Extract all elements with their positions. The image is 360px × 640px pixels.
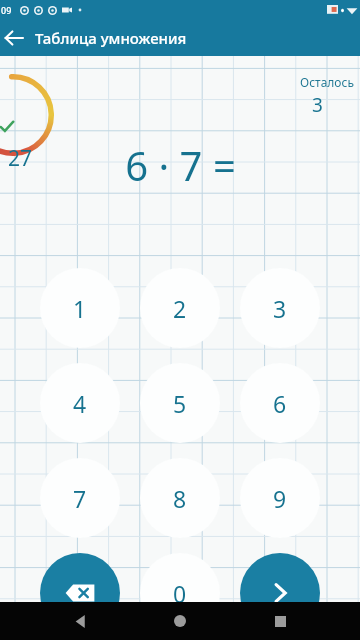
button[interactable]: Backspace bbox=[40, 553, 120, 633]
staticText: 8 bbox=[173, 483, 187, 514]
staticText: 0 bbox=[173, 578, 187, 609]
button[interactable]: Submit bbox=[240, 553, 320, 633]
staticText: 2 bbox=[173, 293, 187, 324]
button[interactable]: Recent apps bbox=[261, 602, 299, 640]
button[interactable]: 6 bbox=[240, 363, 320, 443]
button[interactable]: 2 bbox=[140, 268, 220, 348]
button[interactable]: Back bbox=[0, 20, 34, 56]
button[interactable]: 7 bbox=[40, 458, 120, 538]
staticText: 6 bbox=[273, 388, 287, 419]
button[interactable]: 8 bbox=[140, 458, 220, 538]
staticText: 9 bbox=[273, 483, 287, 514]
button[interactable]: 4 bbox=[40, 363, 120, 443]
staticText: 27 bbox=[8, 144, 33, 173]
staticText: 6 · 7 = bbox=[125, 138, 236, 192]
button[interactable]: Back bbox=[62, 602, 100, 640]
button[interactable]: 5 bbox=[140, 363, 220, 443]
button[interactable]: 9 bbox=[240, 458, 320, 538]
staticText: 5 bbox=[173, 388, 187, 419]
staticText: 09 bbox=[1, 4, 12, 16]
staticText: 3 bbox=[273, 293, 287, 324]
button[interactable]: 1 bbox=[40, 268, 120, 348]
staticText: 4 bbox=[73, 388, 87, 419]
staticText: 1 bbox=[73, 293, 87, 324]
button[interactable]: Home bbox=[161, 602, 199, 640]
staticText: 3 bbox=[312, 92, 323, 118]
staticText: Осталось bbox=[300, 74, 354, 90]
staticText: Таблица умножения bbox=[35, 28, 187, 48]
button[interactable]: 0 bbox=[140, 553, 220, 633]
button[interactable]: 3 bbox=[240, 268, 320, 348]
staticText: 7 bbox=[73, 483, 87, 514]
